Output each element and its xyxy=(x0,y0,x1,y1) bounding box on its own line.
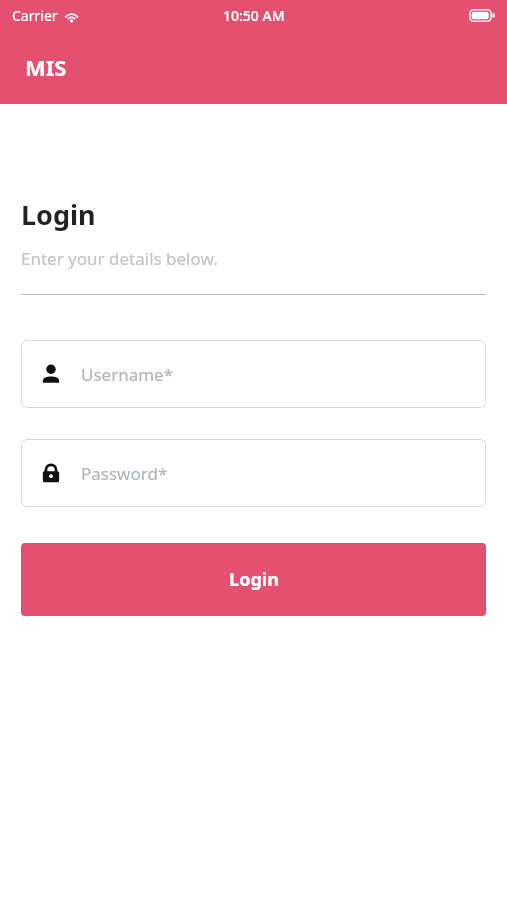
button[interactable]: Password xyxy=(21,439,486,507)
staticText: MIS xyxy=(25,52,67,82)
staticText: Login xyxy=(21,196,96,233)
staticText: Carrier xyxy=(12,6,58,25)
staticText: Username* xyxy=(81,363,174,386)
button[interactable]: Login xyxy=(21,543,486,616)
staticText: Password* xyxy=(81,462,168,485)
staticText: Enter your details below. xyxy=(21,247,218,270)
button[interactable]: Username xyxy=(21,340,486,408)
staticText: Login xyxy=(229,567,279,592)
staticText: 10:50 AM xyxy=(223,6,285,25)
